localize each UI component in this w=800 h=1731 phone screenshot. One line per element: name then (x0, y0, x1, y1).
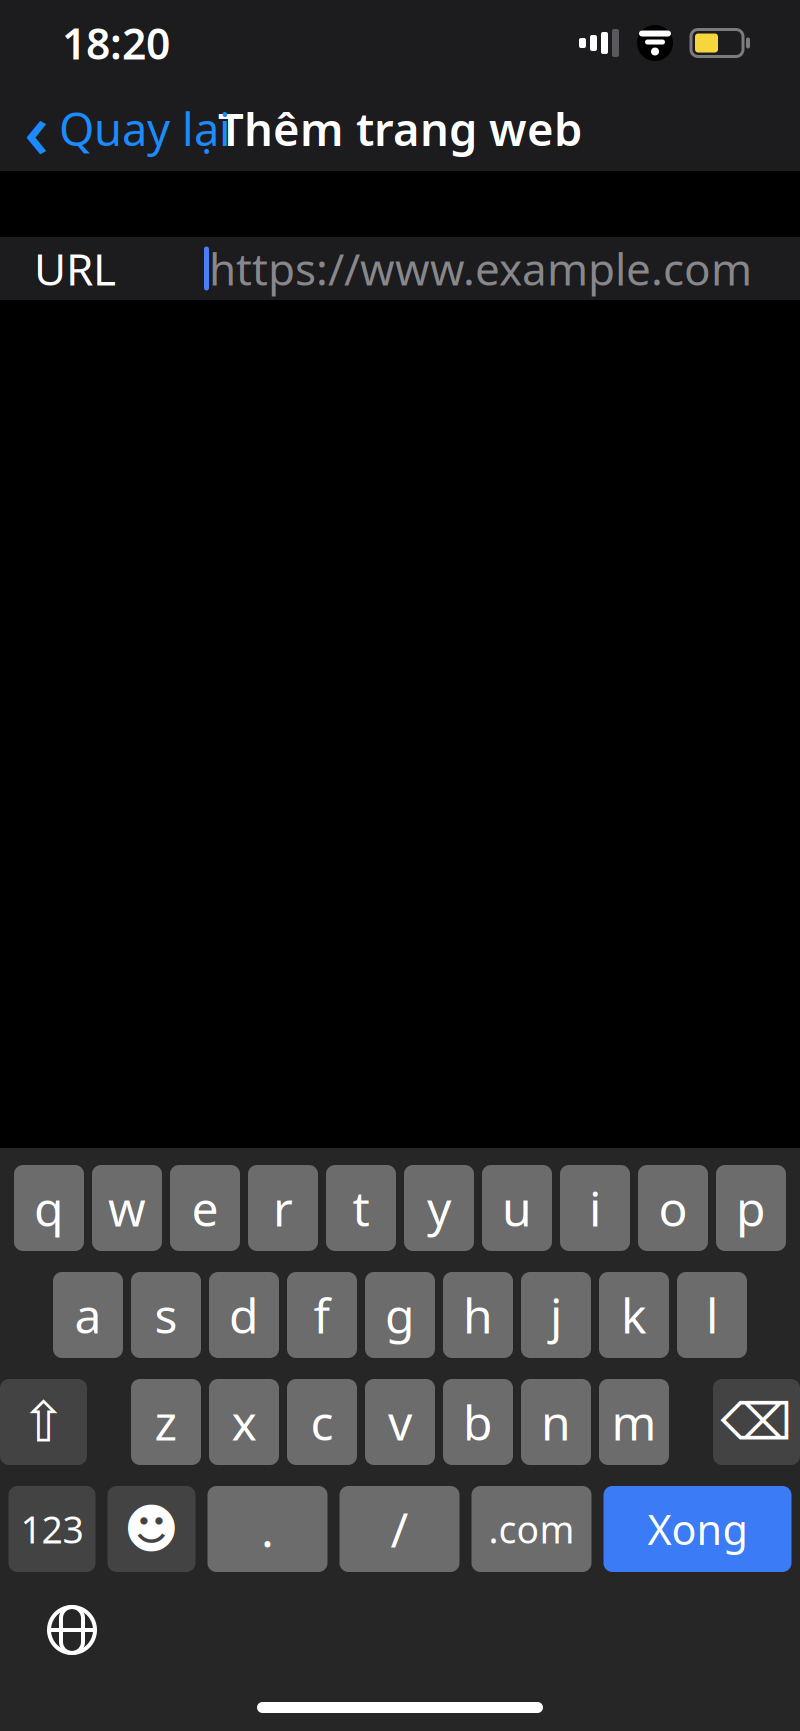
button[interactable]: l (677, 1272, 747, 1358)
staticText: Xong (647, 1502, 747, 1556)
staticText: g (385, 1283, 415, 1347)
staticText: j (550, 1283, 562, 1347)
button[interactable]: Emoji (107, 1486, 195, 1572)
staticText: 18:20 (62, 15, 170, 71)
staticText: . (261, 1497, 274, 1561)
button[interactable]: x (209, 1379, 279, 1465)
button[interactable]: m (599, 1379, 669, 1465)
staticText: Thêm trang web (218, 98, 582, 159)
staticText: 123 (20, 1504, 83, 1554)
button[interactable]: e (170, 1165, 240, 1251)
staticText: v (388, 1390, 412, 1454)
button[interactable]: w (92, 1165, 162, 1251)
staticText: ☻ (123, 1499, 179, 1559)
staticText: p (736, 1176, 766, 1240)
button[interactable]: / (339, 1486, 459, 1572)
staticText: z (154, 1390, 177, 1454)
staticText: ‹ (24, 77, 49, 180)
staticText: b (463, 1390, 493, 1454)
button[interactable]: s (131, 1272, 201, 1358)
staticText: ⌫ (720, 1393, 792, 1451)
staticText: ⇧ (20, 1390, 67, 1454)
button[interactable]: c (287, 1379, 357, 1465)
button[interactable]: f (287, 1272, 357, 1358)
button[interactable]: i (560, 1165, 630, 1251)
button[interactable]: a (53, 1272, 123, 1358)
staticText: s (154, 1283, 177, 1347)
button[interactable]: h (443, 1272, 513, 1358)
staticText: i (589, 1176, 601, 1240)
button[interactable]: Delete (713, 1379, 800, 1465)
staticText: m (611, 1390, 656, 1454)
staticText: c (310, 1390, 333, 1454)
staticText: h (463, 1283, 493, 1347)
button[interactable]: u (482, 1165, 552, 1251)
staticText: q (34, 1176, 64, 1240)
button[interactable]: p (716, 1165, 786, 1251)
staticText: w (108, 1176, 146, 1240)
staticText: r (273, 1176, 293, 1240)
button[interactable]: d (209, 1272, 279, 1358)
staticText: e (191, 1176, 218, 1240)
staticText: d (229, 1283, 259, 1347)
button[interactable]: k (599, 1272, 669, 1358)
staticText: .com (488, 1504, 574, 1554)
staticText: f (313, 1283, 330, 1347)
button[interactable]: o (638, 1165, 708, 1251)
button[interactable]: Next keyboard (42, 1600, 102, 1660)
button[interactable]: t (326, 1165, 396, 1251)
button[interactable]: g (365, 1272, 435, 1358)
staticText: t (352, 1176, 369, 1240)
button[interactable]: y (404, 1165, 474, 1251)
staticText: URL (34, 239, 116, 298)
staticText: u (502, 1176, 532, 1240)
staticText: Quay lại (59, 98, 231, 159)
button[interactable]: 123 (8, 1486, 95, 1572)
staticText: k (621, 1283, 647, 1347)
staticText: y (427, 1176, 451, 1240)
button[interactable]: Xong (603, 1486, 791, 1572)
staticText: a (74, 1283, 101, 1347)
button[interactable]: r (248, 1165, 318, 1251)
button[interactable]: b (443, 1379, 513, 1465)
button[interactable]: v (365, 1379, 435, 1465)
staticText: x (231, 1390, 256, 1454)
button[interactable]: Shift (0, 1379, 87, 1465)
button[interactable]: .com (471, 1486, 591, 1572)
button[interactable]: q (14, 1165, 84, 1251)
button[interactable]: n (521, 1379, 591, 1465)
button[interactable]: . (207, 1486, 327, 1572)
button[interactable]: z (131, 1379, 201, 1465)
staticText: n (541, 1390, 571, 1454)
button[interactable]: ‹ (0, 93, 247, 163)
staticText: https://www.example.com (209, 239, 752, 298)
staticText: o (658, 1176, 687, 1240)
button[interactable]: j (521, 1272, 591, 1358)
staticText: l (706, 1283, 718, 1347)
staticText: / (390, 1497, 408, 1561)
